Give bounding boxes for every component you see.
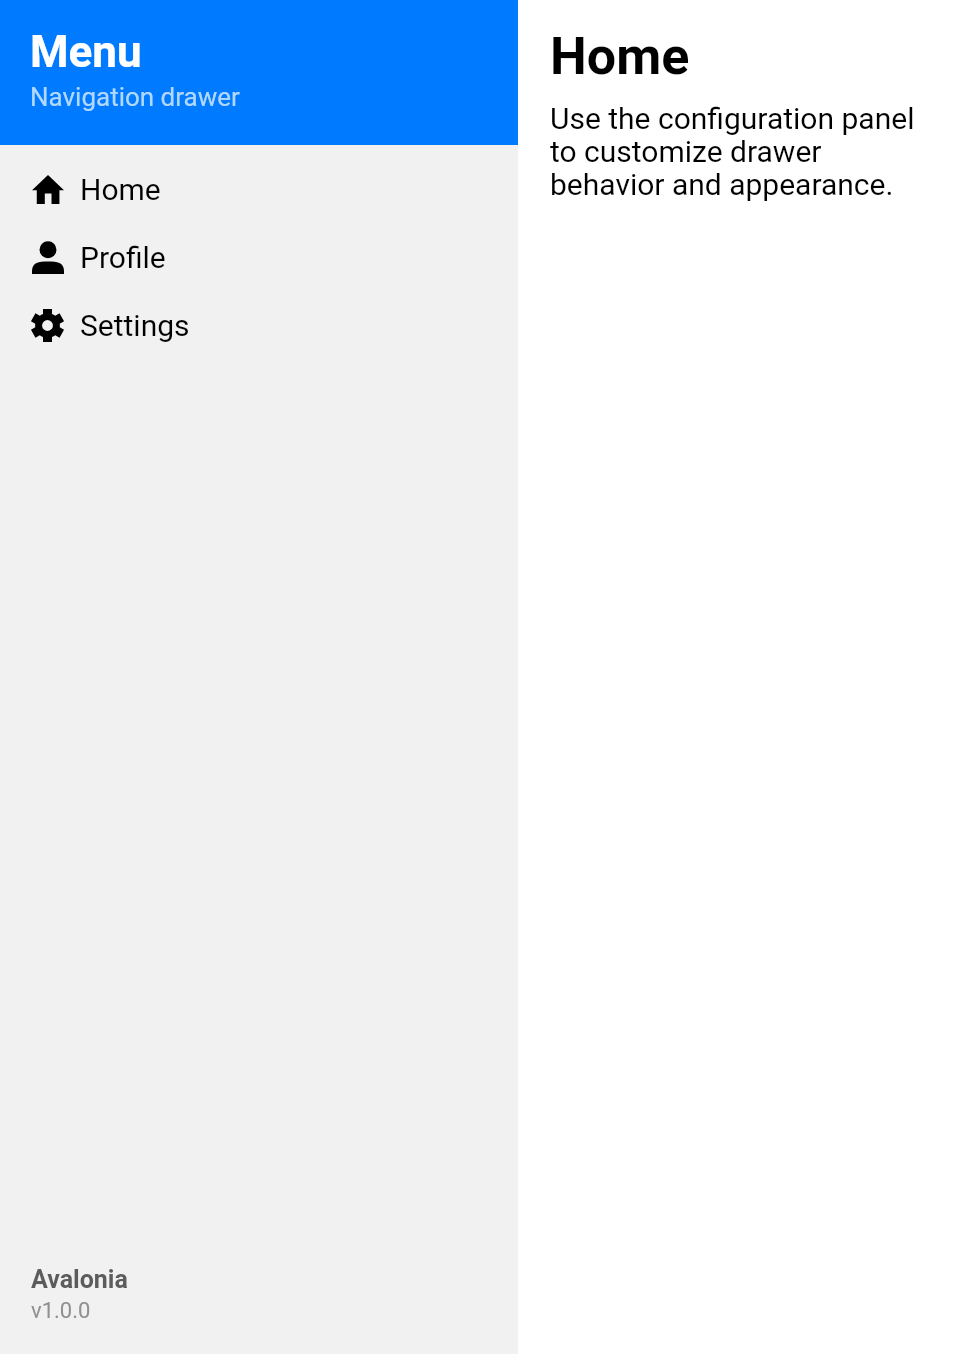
staticText: Use the configuration panel to customize… — [550, 103, 922, 202]
other: Home — [32, 175, 64, 204]
staticText: Settings — [80, 311, 190, 343]
staticText: v1.0.0 — [31, 1299, 91, 1323]
staticText: Home — [80, 175, 161, 207]
staticText: Navigation drawer — [30, 84, 240, 112]
button[interactable]: Home — [0, 155, 518, 223]
other: Profile — [32, 241, 64, 274]
staticText: Menu — [30, 31, 142, 77]
staticText: Avalonia — [31, 1267, 128, 1294]
button[interactable]: Profile — [0, 223, 518, 291]
staticText: Profile — [80, 243, 166, 275]
other: Settings — [32, 309, 63, 342]
staticText: Home — [550, 31, 690, 85]
button[interactable]: Settings — [0, 291, 518, 359]
